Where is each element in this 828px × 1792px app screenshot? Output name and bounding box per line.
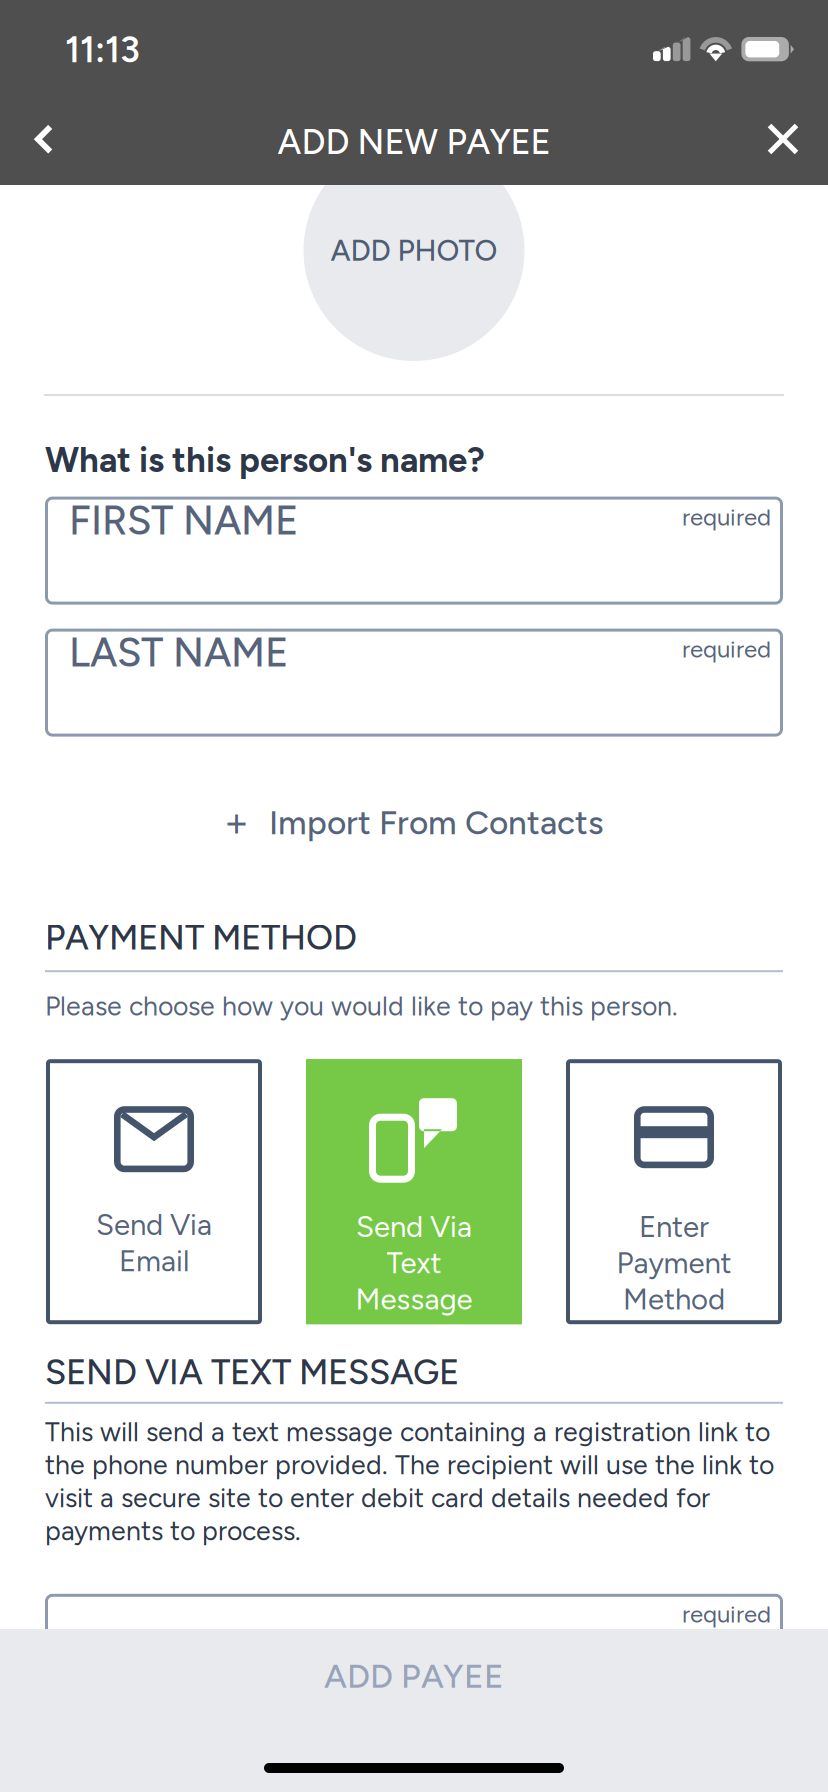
staticText: PAYMENT METHOD [45, 917, 357, 958]
staticText: ADD PHOTO [330, 233, 497, 268]
staticText: SEND VIA TEXT MESSAGE [45, 1351, 459, 1393]
button[interactable]: LAST NAME [45, 629, 783, 737]
staticText: 11:13 [65, 28, 140, 71]
staticText: Send Via [96, 1207, 212, 1242]
staticText: Method [623, 1282, 725, 1317]
button[interactable]: Send Via [306, 1059, 522, 1324]
button[interactable] [45, 1594, 783, 1702]
staticText: LAST NAME [69, 629, 289, 677]
staticText: + [224, 799, 249, 847]
staticText: Import From Contacts [269, 803, 604, 843]
button[interactable]: Send Via [46, 1059, 262, 1324]
staticText: Payment [616, 1245, 731, 1281]
button[interactable]: Back [0, 91, 92, 187]
staticText: What is this person's name? [45, 439, 485, 481]
button[interactable]: FIRST NAME [45, 497, 783, 605]
staticText: Send Via [356, 1209, 472, 1244]
staticText: required [682, 635, 771, 663]
button[interactable]: Close [735, 91, 828, 187]
staticText: required [682, 503, 771, 531]
staticText: Enter [639, 1209, 709, 1244]
staticText: ADD PAYEE [324, 1656, 504, 1696]
button[interactable]: + [0, 795, 828, 851]
staticText: Email [119, 1243, 189, 1279]
staticText: This will send a text message containing… [45, 1416, 774, 1547]
button[interactable]: Enter [566, 1059, 782, 1324]
staticText: FIRST NAME [69, 497, 299, 545]
staticText: required [682, 1600, 771, 1629]
staticText: ADD NEW PAYEE [277, 121, 550, 163]
staticText: Text [386, 1245, 441, 1281]
staticText: Please choose how you would like to pay … [45, 990, 678, 1022]
button[interactable]: ADD PAYEE [0, 1629, 828, 1792]
staticText: Message [355, 1282, 472, 1317]
